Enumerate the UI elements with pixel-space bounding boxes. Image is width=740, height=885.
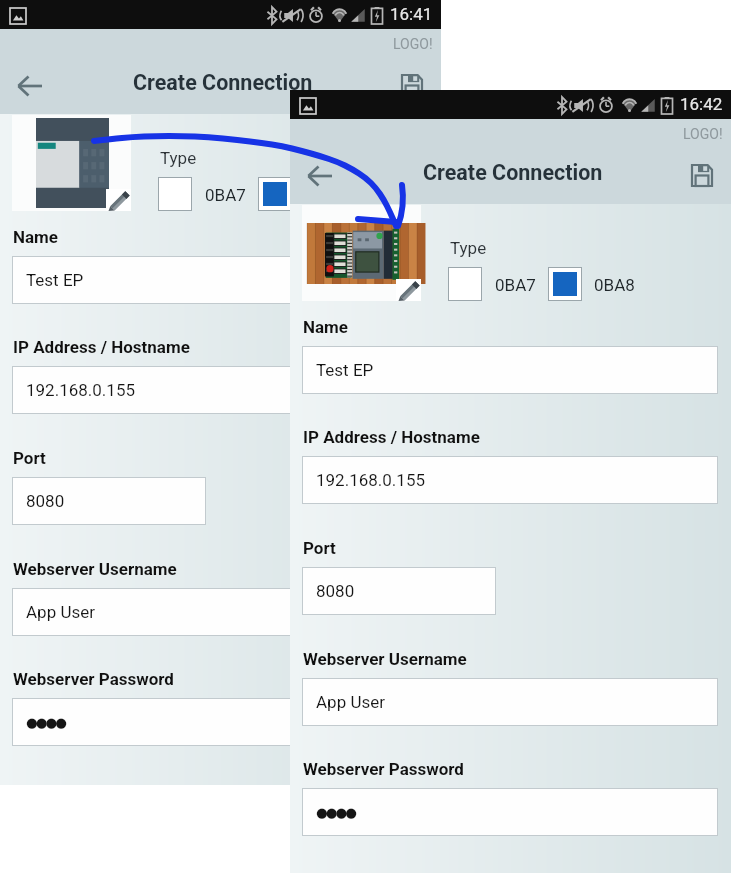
staticText: Name: [303, 317, 348, 337]
button[interactable]: App User: [302, 678, 718, 726]
button[interactable]: ●●●●: [12, 698, 428, 746]
staticText: Test EP: [316, 360, 374, 380]
staticText: Name: [13, 227, 58, 247]
staticText: IP Address / Hostname: [13, 337, 190, 357]
staticText: Create Connection: [133, 70, 313, 95]
staticText: Create Connection: [423, 160, 603, 185]
button[interactable]: Edit connection image: [12, 115, 131, 211]
staticText: 16:42: [680, 94, 723, 114]
staticText: Type: [160, 148, 197, 168]
staticText: 0BA8: [594, 275, 635, 295]
staticText: Port: [13, 448, 46, 468]
button[interactable]: Type 0BA8: [548, 267, 582, 301]
button[interactable]: Test EP: [12, 256, 428, 304]
staticText: Webserver Password: [13, 669, 174, 689]
button[interactable]: App User: [12, 588, 428, 636]
staticText: Webserver Username: [303, 649, 467, 669]
staticText: Port: [303, 538, 336, 558]
staticText: 16:41: [390, 4, 433, 24]
staticText: ●●●●: [316, 804, 356, 820]
staticText: App User: [26, 602, 95, 622]
staticText: 0BA7: [205, 185, 246, 205]
button[interactable]: 8080: [302, 567, 496, 615]
staticText: 0BA8: [304, 185, 345, 205]
staticText: 192.168.0.155: [26, 380, 135, 400]
staticText: 8080: [26, 491, 65, 511]
button[interactable]: 8080: [12, 477, 206, 525]
staticText: 8080: [316, 581, 355, 601]
staticText: IP Address / Hostname: [303, 427, 480, 447]
staticText: LOGO!: [393, 36, 433, 52]
staticText: Webserver Username: [13, 559, 177, 579]
button[interactable]: Edit connection image: [302, 205, 421, 301]
button[interactable]: Type 0BA7: [448, 267, 482, 301]
staticText: Webserver Password: [303, 759, 464, 779]
button[interactable]: Type 0BA7: [158, 177, 192, 211]
button[interactable]: 192.168.0.155: [302, 456, 718, 504]
button[interactable]: Test EP: [302, 346, 718, 394]
staticText: App User: [316, 692, 385, 712]
button[interactable]: Save: [390, 63, 434, 107]
button[interactable]: Back: [292, 152, 346, 200]
staticText: 192.168.0.155: [316, 470, 425, 490]
staticText: ●●●●: [26, 714, 66, 730]
staticText: LOGO!: [683, 126, 723, 142]
staticText: Test EP: [26, 270, 84, 290]
button[interactable]: Back: [2, 62, 56, 110]
button[interactable]: Save: [680, 153, 724, 197]
button[interactable]: ●●●●: [302, 788, 718, 836]
staticText: 0BA7: [495, 275, 536, 295]
button[interactable]: 192.168.0.155: [12, 366, 428, 414]
staticText: Type: [450, 238, 487, 258]
button[interactable]: Type 0BA8: [258, 177, 292, 211]
